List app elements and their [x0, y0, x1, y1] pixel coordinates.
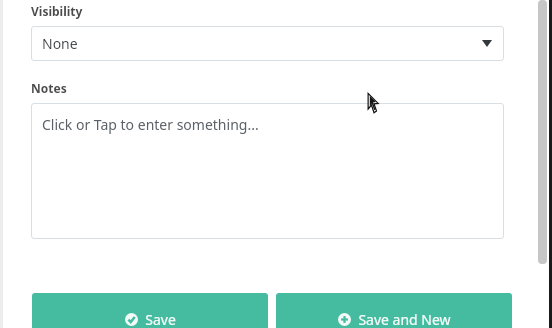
staticText: Visibility — [31, 3, 83, 19]
other: Scroll — [538, 0, 547, 264]
button[interactable]: Save and New — [276, 293, 512, 328]
staticText: Click or Tap to enter something... — [42, 115, 259, 134]
button[interactable]: Save — [32, 293, 268, 328]
staticText: Notes — [31, 80, 67, 96]
staticText: Save — [145, 310, 176, 328]
staticText: Save and New — [358, 310, 451, 328]
button[interactable]: Click or Tap to enter something... — [31, 103, 504, 239]
staticText: None — [42, 34, 78, 53]
button[interactable]: None — [31, 26, 504, 61]
